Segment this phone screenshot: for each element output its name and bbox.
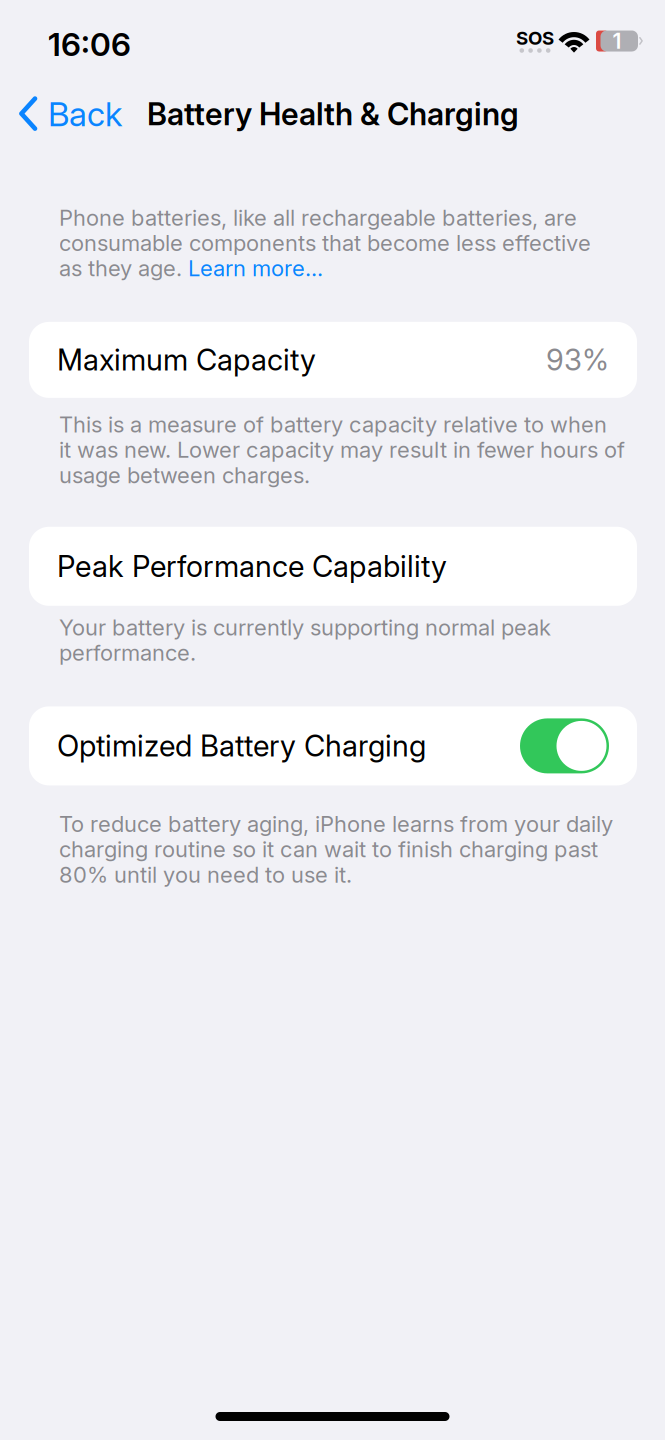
staticText: Battery Health & Charging bbox=[147, 95, 519, 132]
button[interactable]: Learn more... bbox=[188, 255, 323, 281]
staticText: 93% bbox=[546, 342, 609, 378]
staticText: as they age. bbox=[59, 255, 188, 281]
staticText: 16:06 bbox=[48, 25, 131, 64]
button[interactable]: Optimized Battery Charging bbox=[520, 718, 609, 773]
staticText: Phone batteries, like all rechargeable b… bbox=[59, 204, 577, 231]
staticText: 1 bbox=[612, 28, 621, 54]
button[interactable]: Back bbox=[0, 76, 135, 152]
button[interactable]: Peak Performance Capability bbox=[0, 527, 637, 606]
staticText: Your battery is currently supporting nor… bbox=[59, 614, 551, 641]
staticText: To reduce battery aging, iPhone learns f… bbox=[59, 811, 613, 837]
staticText: This is a measure of battery capacity re… bbox=[59, 411, 607, 438]
staticText: performance. bbox=[59, 639, 196, 666]
staticText: Peak Performance Capability bbox=[57, 549, 447, 584]
staticText: Learn more... bbox=[188, 255, 323, 281]
staticText: SOS bbox=[516, 27, 554, 49]
staticText: charging routine so it can wait to finis… bbox=[59, 836, 598, 863]
staticText: consumable components that become less e… bbox=[59, 230, 591, 256]
staticText: 80% until you need to use it. bbox=[59, 861, 352, 888]
staticText: Optimized Battery Charging bbox=[57, 728, 426, 764]
staticText: Back bbox=[48, 94, 122, 134]
staticText: usage between charges. bbox=[59, 462, 310, 488]
staticText: Maximum Capacity bbox=[57, 342, 316, 378]
staticText: it was new. Lower capacity may result in… bbox=[59, 436, 625, 463]
